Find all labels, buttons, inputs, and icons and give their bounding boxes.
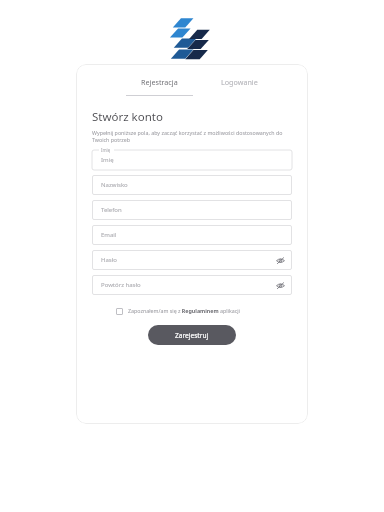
- button[interactable]: Zarejestruj: [148, 325, 236, 345]
- button[interactable]: Email: [92, 225, 292, 245]
- staticText: Rejestracja: [141, 77, 178, 87]
- button[interactable]: Powtórz hasło: [92, 275, 292, 295]
- staticText: Logowanie: [221, 77, 258, 87]
- button[interactable]: Pokaż hasło: [275, 280, 286, 291]
- button[interactable]: Logowanie: [215, 73, 264, 91]
- staticText: Powtórz hasło: [101, 281, 141, 289]
- staticText: Nazwisko: [101, 181, 128, 189]
- staticText: Hasło: [101, 256, 117, 264]
- button[interactable]: Telefon: [92, 200, 292, 220]
- button[interactable]: Nazwisko: [92, 175, 292, 195]
- staticText: Imię: [101, 156, 114, 164]
- button[interactable]: Rejestracja: [126, 73, 193, 96]
- staticText: Imię: [101, 147, 111, 153]
- button[interactable]: Pokaż hasło: [275, 255, 286, 266]
- staticText: Email: [101, 231, 117, 239]
- staticText: Wypełnij poniższe pola, aby zacząć korzy…: [92, 129, 292, 143]
- staticText: Zarejestruj: [175, 331, 209, 340]
- button[interactable]: Hasło: [92, 250, 292, 270]
- staticText: Stwórz konto: [92, 109, 163, 125]
- button[interactable]: Imię: [92, 150, 292, 170]
- staticText: Zapoznałem/am się z Regulaminem aplikacj…: [128, 307, 240, 314]
- staticText: Telefon: [101, 206, 122, 214]
- button[interactable]: Zapoznałem/am się z Regulaminem aplikacj…: [92, 307, 292, 314]
